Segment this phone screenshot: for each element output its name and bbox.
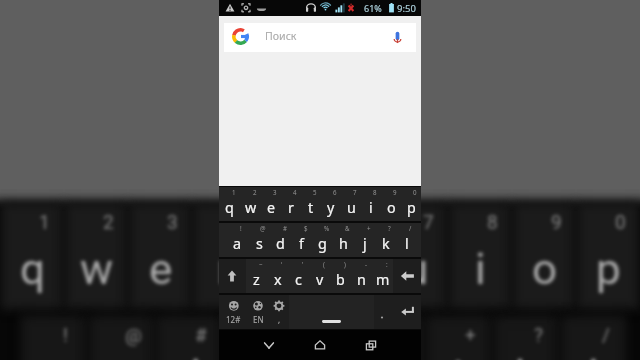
button[interactable]: - bbox=[351, 259, 372, 293]
staticText: @ bbox=[260, 224, 266, 232]
button[interactable]: 12# bbox=[219, 295, 247, 329]
button[interactable]: Voice search bbox=[390, 30, 405, 45]
staticText: $ bbox=[304, 224, 308, 232]
staticText: z bbox=[253, 270, 260, 289]
button[interactable]: / bbox=[396, 223, 417, 257]
button[interactable]: ~ bbox=[246, 259, 267, 293]
staticText: j bbox=[363, 234, 367, 253]
staticText: 9 bbox=[393, 188, 397, 196]
button[interactable]: 9 bbox=[381, 187, 401, 221]
button[interactable]: Hide keyboard bbox=[253, 330, 285, 360]
button[interactable]: 6 bbox=[321, 187, 341, 221]
button[interactable]: @ bbox=[248, 223, 270, 257]
staticText: l bbox=[405, 234, 409, 253]
staticText: p bbox=[407, 198, 416, 217]
staticText: e bbox=[267, 198, 276, 217]
staticText: Поиск bbox=[265, 29, 297, 43]
button[interactable]: ( bbox=[309, 259, 330, 293]
staticText: s bbox=[256, 234, 263, 253]
staticText: d bbox=[276, 234, 285, 253]
staticText: r bbox=[288, 198, 294, 217]
button[interactable]: & bbox=[333, 223, 354, 257]
staticText: % bbox=[324, 224, 330, 232]
staticText: u bbox=[347, 198, 356, 217]
staticText: x bbox=[274, 270, 282, 289]
staticText: o bbox=[387, 198, 396, 217]
button[interactable]: 0 bbox=[401, 187, 421, 221]
staticText: ‘ bbox=[281, 260, 283, 268]
staticText: w bbox=[245, 198, 257, 217]
staticText: m bbox=[376, 270, 390, 289]
button[interactable]: 2 bbox=[240, 187, 261, 221]
staticText: k bbox=[382, 234, 390, 253]
button[interactable]: Home bbox=[304, 330, 336, 360]
button[interactable]: Period bbox=[374, 295, 393, 329]
staticText: ’ bbox=[302, 260, 304, 268]
button[interactable]: 5 bbox=[301, 187, 321, 221]
staticText: 0 bbox=[413, 188, 417, 196]
staticText: / bbox=[409, 224, 412, 232]
staticText: b bbox=[336, 270, 345, 289]
button[interactable]: Recent apps bbox=[355, 330, 387, 360]
staticText: n bbox=[357, 270, 366, 289]
staticText: ~ bbox=[259, 260, 263, 268]
staticText: 6 bbox=[333, 188, 337, 196]
button[interactable]: 1 bbox=[219, 187, 240, 221]
button[interactable]: ? bbox=[375, 223, 396, 257]
staticText: ) bbox=[344, 260, 346, 268]
staticText: g bbox=[318, 234, 327, 253]
button[interactable]: : bbox=[372, 259, 393, 293]
staticText: 1 bbox=[232, 188, 236, 196]
button[interactable]: 7 bbox=[341, 187, 361, 221]
staticText: ( bbox=[323, 260, 325, 268]
staticText: EN bbox=[253, 314, 264, 325]
button[interactable]: ’ bbox=[288, 259, 309, 293]
staticText: 61% bbox=[364, 2, 382, 14]
button[interactable]: $ bbox=[291, 223, 312, 257]
staticText: 12# bbox=[226, 314, 241, 325]
staticText: 2 bbox=[253, 188, 257, 196]
staticText: t bbox=[308, 198, 314, 217]
staticText: 4 bbox=[293, 188, 297, 196]
button[interactable]: ) bbox=[330, 259, 351, 293]
button[interactable]: + bbox=[354, 223, 375, 257]
button[interactable]: Enter bbox=[393, 295, 421, 329]
button[interactable]: Shift bbox=[219, 259, 246, 293]
staticText: y bbox=[327, 198, 335, 217]
button[interactable]: EN bbox=[247, 295, 269, 329]
button[interactable]: Space bbox=[289, 295, 374, 329]
staticText: v bbox=[316, 270, 324, 289]
staticText: & bbox=[345, 224, 350, 232]
staticText: h bbox=[339, 234, 348, 253]
staticText: i bbox=[369, 198, 373, 217]
staticText: q bbox=[225, 198, 234, 217]
staticText: ? bbox=[388, 224, 391, 232]
staticText: 8 bbox=[373, 188, 377, 196]
staticText: , bbox=[278, 314, 281, 325]
button[interactable]: Поиск bbox=[224, 23, 416, 52]
button[interactable]: # bbox=[270, 223, 291, 257]
button[interactable]: Backspace bbox=[393, 259, 421, 293]
staticText: f bbox=[299, 234, 304, 253]
button[interactable]: 8 bbox=[361, 187, 381, 221]
staticText: - bbox=[365, 260, 367, 268]
staticText: ! bbox=[240, 224, 242, 232]
staticText: 5 bbox=[313, 188, 317, 196]
button[interactable]: ! bbox=[226, 223, 248, 257]
staticText: 9:50 bbox=[397, 2, 416, 15]
staticText: # bbox=[283, 224, 287, 232]
button[interactable]: % bbox=[312, 223, 333, 257]
staticText: a bbox=[233, 234, 242, 253]
button[interactable]: 4 bbox=[281, 187, 301, 221]
staticText: : bbox=[386, 260, 388, 268]
staticText: 3 bbox=[273, 188, 277, 196]
staticText: + bbox=[367, 224, 371, 232]
button[interactable]: , bbox=[269, 295, 289, 329]
button[interactable]: 3 bbox=[261, 187, 281, 221]
staticText: c bbox=[295, 270, 302, 289]
staticText: 7 bbox=[353, 188, 357, 196]
button[interactable]: ‘ bbox=[267, 259, 288, 293]
